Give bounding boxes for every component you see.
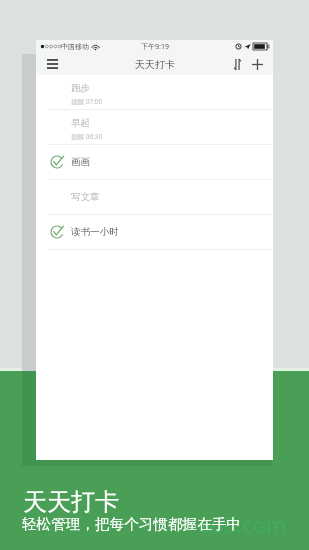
staticText: ao8.com xyxy=(198,509,287,539)
button[interactable]: Add xyxy=(247,54,267,74)
staticText: 跑步 xyxy=(71,82,90,94)
staticText: 天天打卡 xyxy=(135,58,175,71)
button[interactable]: 跑步 xyxy=(36,75,273,109)
staticText: 提醒 07:00 xyxy=(71,97,103,106)
staticText: 写文章 xyxy=(71,191,100,203)
staticText: 天天打卡 xyxy=(23,487,119,517)
button[interactable]: Menu xyxy=(42,54,62,74)
staticText: 早起 xyxy=(71,117,90,129)
button[interactable]: 画画 xyxy=(36,145,273,179)
button[interactable]: 早起 xyxy=(36,110,273,144)
staticText: 中国移动 xyxy=(61,42,89,51)
button[interactable]: 读书一小时 xyxy=(36,215,273,249)
staticText: 轻松管理，把每个习惯都握在手中 xyxy=(22,515,241,533)
staticText: 画画 xyxy=(71,156,90,168)
staticText: 读书一小时 xyxy=(71,226,119,238)
staticText: 提醒 06:30 xyxy=(71,132,103,141)
button[interactable]: 写文章 xyxy=(36,180,273,214)
staticText: 下午9:19 xyxy=(141,42,169,52)
button[interactable]: Sort xyxy=(227,54,247,74)
